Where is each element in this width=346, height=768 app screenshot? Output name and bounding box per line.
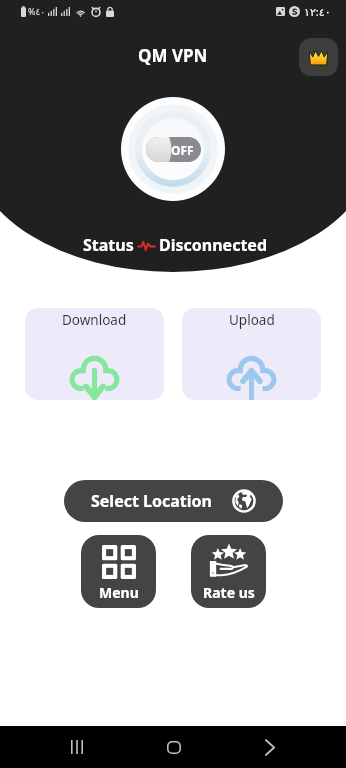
button[interactable]: Home (155, 726, 193, 768)
button[interactable]: Select Location (64, 480, 283, 522)
staticText: Menu (99, 583, 139, 602)
staticText: OFF (171, 142, 194, 158)
staticText: QM VPN (138, 44, 208, 67)
button[interactable]: Premium (299, 38, 338, 76)
button[interactable]: Back (251, 726, 289, 768)
button[interactable]: Menu (81, 535, 156, 608)
button[interactable]: Connect toggle (121, 97, 225, 201)
staticText: Status (83, 234, 134, 256)
staticText: Rate us (203, 583, 255, 602)
staticText: Download (62, 311, 127, 329)
staticText: Select Location (91, 490, 212, 512)
staticText: ١٢:٤٠ (304, 4, 331, 19)
button[interactable]: Rate us (191, 535, 266, 608)
staticText: %٤٠ (28, 5, 46, 17)
button[interactable]: Upload (182, 308, 321, 400)
staticText: Disconnected (159, 234, 268, 256)
button[interactable]: Recents (58, 726, 96, 768)
button[interactable]: Download (25, 308, 164, 400)
staticText: Upload (229, 311, 275, 329)
